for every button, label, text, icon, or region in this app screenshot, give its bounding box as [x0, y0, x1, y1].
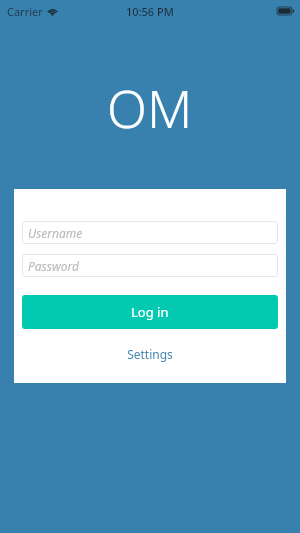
staticText: Carrier — [7, 4, 43, 19]
button[interactable]: Settings — [22, 341, 278, 367]
button[interactable]: Log in — [22, 295, 278, 329]
button[interactable]: Password — [22, 254, 278, 277]
staticText: 10:56 PM — [126, 4, 174, 19]
staticText: Password — [28, 258, 79, 274]
staticText: Username — [28, 225, 83, 241]
staticText: Log in — [131, 303, 169, 321]
staticText: OM — [107, 72, 193, 143]
staticText: Settings — [127, 346, 173, 362]
button[interactable]: Username — [22, 221, 278, 244]
